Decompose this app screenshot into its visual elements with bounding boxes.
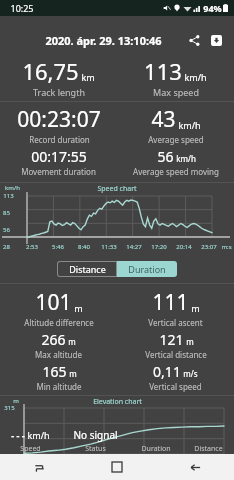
staticText: 56 bbox=[157, 147, 174, 166]
staticText: Elevation chart bbox=[93, 397, 142, 407]
staticText: Vertical ascent bbox=[148, 317, 203, 328]
staticText: 8:40 bbox=[78, 243, 90, 251]
staticText: Status bbox=[85, 444, 106, 454]
staticText: 113 bbox=[144, 56, 182, 86]
staticText: 315 bbox=[4, 404, 15, 412]
staticText: km bbox=[81, 71, 95, 83]
button[interactable]: Home bbox=[78, 454, 156, 480]
staticText: m bbox=[69, 368, 77, 379]
staticText: Track length bbox=[33, 86, 85, 98]
staticText: Average speed moving bbox=[133, 166, 219, 177]
staticText: 16,75 bbox=[22, 56, 79, 86]
staticText: Distance bbox=[194, 444, 223, 454]
staticText: Speed chart bbox=[97, 184, 137, 194]
staticText: Average speed bbox=[148, 134, 204, 145]
staticText: No signal bbox=[73, 428, 118, 442]
staticText: m bbox=[68, 336, 76, 347]
button[interactable]: Duration bbox=[117, 261, 177, 277]
button[interactable]: Recent apps bbox=[0, 454, 78, 480]
staticText: 165 bbox=[42, 362, 67, 381]
staticText: m:s bbox=[221, 243, 232, 251]
staticText: 00:17:55 bbox=[31, 147, 87, 166]
staticText: 11:33 bbox=[101, 243, 117, 251]
staticText: Distance bbox=[69, 263, 106, 275]
staticText: 101 bbox=[35, 288, 72, 317]
staticText: Duration bbox=[141, 444, 171, 454]
staticText: km/h bbox=[27, 429, 50, 441]
staticText: m bbox=[74, 302, 83, 314]
staticText: 17:20 bbox=[151, 243, 167, 251]
staticText: Duration bbox=[128, 263, 166, 275]
staticText: 28 bbox=[3, 243, 10, 251]
staticText: 85 bbox=[3, 209, 10, 217]
staticText: 111 bbox=[152, 288, 189, 317]
staticText: Min altitude bbox=[36, 381, 82, 392]
staticText: 94% bbox=[203, 2, 222, 14]
staticText: m bbox=[186, 336, 194, 347]
staticText: m bbox=[191, 302, 200, 314]
staticText: km/h bbox=[176, 153, 196, 164]
staticText: km/h bbox=[184, 71, 207, 83]
staticText: 266 bbox=[41, 330, 66, 349]
staticText: Speed bbox=[20, 444, 41, 454]
staticText: Record duration bbox=[29, 134, 90, 145]
staticText: km/h bbox=[5, 184, 20, 192]
staticText: 5:46 bbox=[52, 243, 64, 251]
staticText: 23:07 bbox=[201, 243, 217, 251]
staticText: 0,11 bbox=[153, 362, 181, 381]
button[interactable]: Save bbox=[206, 30, 226, 50]
staticText: 10:25 bbox=[10, 2, 34, 14]
staticText: 00:23:07 bbox=[17, 105, 101, 134]
staticText: 2:53 bbox=[26, 243, 38, 251]
staticText: Max altitude bbox=[35, 349, 82, 360]
staticText: 20:14 bbox=[176, 243, 192, 251]
staticText: 2020. ápr. 29. 13:10:46 bbox=[45, 33, 162, 48]
staticText: Movement duration bbox=[21, 166, 96, 177]
staticText: 121 bbox=[159, 330, 184, 349]
button[interactable]: Back bbox=[156, 454, 234, 480]
staticText: Altitude difference bbox=[24, 317, 94, 328]
staticText: m bbox=[13, 397, 19, 405]
staticText: 43 bbox=[151, 105, 176, 134]
staticText: Vertical speed bbox=[149, 381, 202, 392]
staticText: 113 bbox=[3, 192, 14, 200]
staticText: - - - bbox=[11, 429, 25, 441]
staticText: 14:27 bbox=[126, 243, 142, 251]
staticText: 56 bbox=[3, 226, 10, 234]
staticText: m/s bbox=[183, 368, 198, 379]
staticText: km/h bbox=[178, 119, 201, 131]
button[interactable]: Share bbox=[184, 30, 204, 50]
button[interactable]: Distance bbox=[57, 261, 117, 277]
staticText: Vertical distance bbox=[145, 349, 207, 360]
staticText: Max speed bbox=[153, 86, 199, 98]
